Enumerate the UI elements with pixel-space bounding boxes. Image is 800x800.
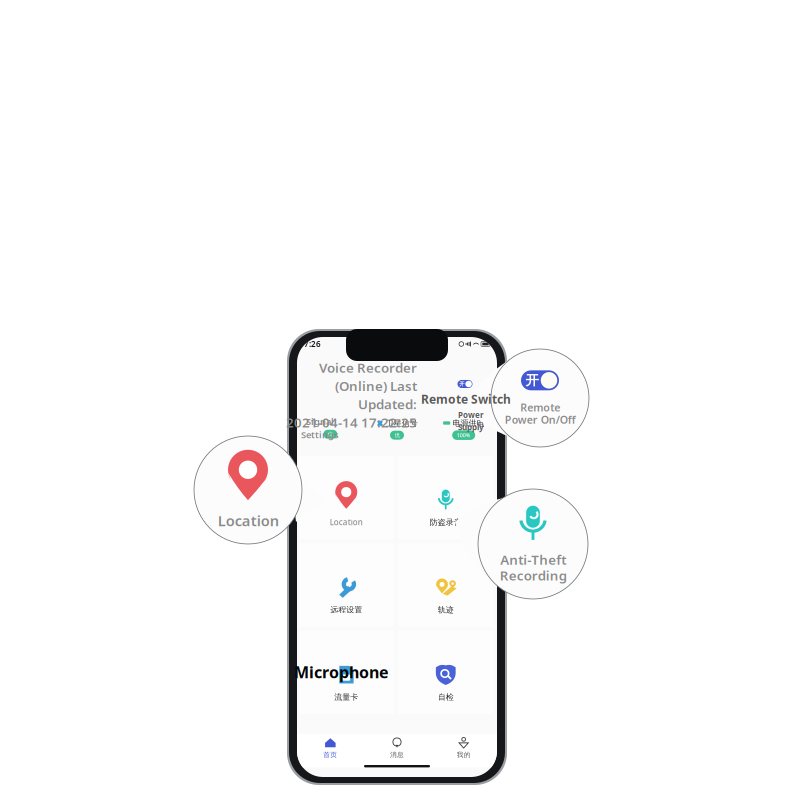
- staticText: (Online) Last: [335, 377, 417, 395]
- staticText: Location: [217, 511, 278, 530]
- staticText: Remote Switch: [421, 391, 511, 407]
- staticText: 7:26: [304, 339, 321, 349]
- staticText: Remote Power On/Off: [504, 400, 575, 427]
- staticText: 自检: [438, 692, 454, 702]
- button[interactable]: 电源供电: [430, 418, 497, 440]
- button[interactable]: 防盗录音: [398, 456, 493, 539]
- staticText: 开: [525, 372, 538, 388]
- staticText: Microphone: [294, 661, 389, 683]
- staticText: 消息: [390, 751, 404, 759]
- staticText: Anti-Theft Recording: [499, 551, 566, 584]
- staticText: 轨迹: [438, 605, 454, 615]
- button[interactable]: 卫星信号: [364, 418, 430, 440]
- button[interactable]: Remote power switch: [455, 377, 475, 391]
- staticText: 优: [394, 432, 399, 438]
- staticText: 我的: [457, 751, 471, 759]
- staticText: Settings: [301, 428, 339, 441]
- staticText: Location: [330, 517, 363, 527]
- staticText: 流量卡: [334, 692, 358, 702]
- staticText: Voice Recorder: [319, 359, 417, 376]
- staticText: 开: [459, 381, 464, 387]
- staticText: 远程设置: [330, 605, 362, 615]
- button[interactable]: 首页: [297, 737, 364, 759]
- button[interactable]: 自检: [398, 631, 493, 714]
- button[interactable]: 消息: [364, 737, 430, 759]
- staticText: Power: [458, 410, 484, 420]
- staticText: 优: [328, 431, 333, 438]
- staticText: Signal: [306, 415, 334, 427]
- button[interactable]: 我的: [430, 737, 497, 759]
- staticText: 卫星信号: [386, 418, 418, 428]
- button[interactable]: 优: [297, 419, 364, 439]
- button[interactable]: 远程设置: [299, 543, 393, 627]
- staticText: 100%: [457, 432, 471, 439]
- staticText: 电源供电: [452, 418, 484, 428]
- staticText: Updated:: [358, 395, 417, 413]
- staticText: Supply: [458, 422, 484, 432]
- staticText: 2021-04-14 17:22:25: [286, 413, 417, 431]
- staticText: 防盗录音: [430, 517, 462, 527]
- staticText: 首页: [323, 751, 337, 759]
- button[interactable]: 流量卡: [299, 631, 393, 714]
- button[interactable]: 轨迹: [398, 543, 493, 627]
- button[interactable]: Location: [299, 456, 393, 539]
